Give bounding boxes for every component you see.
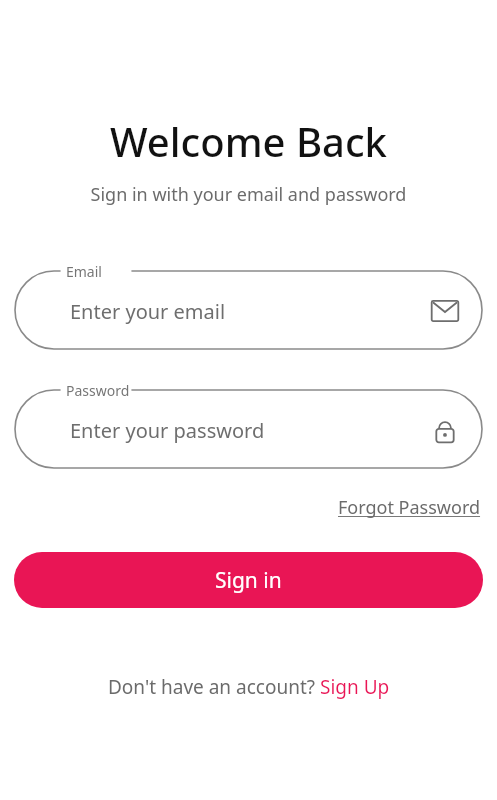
- staticText: Enter your password: [70, 417, 265, 444]
- staticText: Welcome Back: [14, 114, 483, 168]
- staticText: Password: [66, 381, 130, 400]
- staticText: Forgot Password: [338, 495, 481, 520]
- button[interactable]: Forgot Password: [336, 493, 483, 522]
- other: Email: [431, 297, 459, 325]
- staticText: Sign Up: [320, 674, 390, 700]
- button[interactable]: Sign Up: [320, 674, 390, 700]
- staticText: Sign in: [215, 566, 282, 595]
- staticText: Email: [66, 262, 102, 281]
- staticText: Don't have an account?: [108, 674, 320, 700]
- button[interactable]: Sign in: [14, 552, 483, 608]
- button[interactable]: Password: [14, 381, 483, 469]
- staticText: Sign in with your email and password: [14, 182, 483, 207]
- staticText: Enter your email: [70, 298, 226, 325]
- other: Password: [431, 416, 459, 444]
- button[interactable]: Email: [14, 262, 483, 350]
